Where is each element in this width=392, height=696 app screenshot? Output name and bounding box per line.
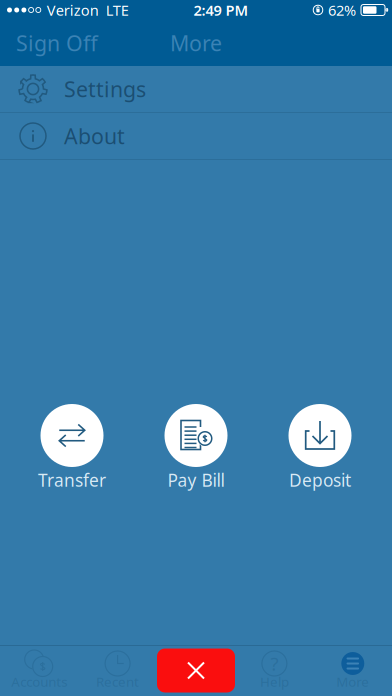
staticText: 2:49 PM (193, 0, 248, 20)
staticText: Settings (64, 75, 146, 103)
staticText: 62% (328, 0, 356, 20)
button[interactable]: Transfer (10, 404, 134, 491)
button[interactable]: Pay Bill (134, 404, 258, 491)
staticText: More (336, 673, 369, 690)
staticText: Deposit (289, 468, 351, 491)
staticText: Verizon (47, 0, 99, 20)
button[interactable]: Close (157, 648, 235, 692)
button[interactable]: Deposit (258, 404, 382, 491)
button[interactable]: Sign Off (0, 21, 114, 65)
staticText: Accounts (11, 673, 67, 690)
button[interactable]: About (0, 113, 392, 159)
staticText: LTE (106, 0, 129, 20)
button[interactable]: Settings (0, 66, 392, 112)
staticText: Sign Off (16, 29, 98, 57)
staticText: About (64, 122, 125, 150)
staticText: Recent (96, 673, 139, 690)
staticText: More (170, 29, 222, 57)
staticText: Help (260, 673, 289, 690)
button[interactable]: More (314, 646, 392, 696)
staticText: Transfer (38, 468, 106, 491)
staticText: Pay Bill (167, 468, 224, 491)
staticText: ? (270, 651, 278, 676)
